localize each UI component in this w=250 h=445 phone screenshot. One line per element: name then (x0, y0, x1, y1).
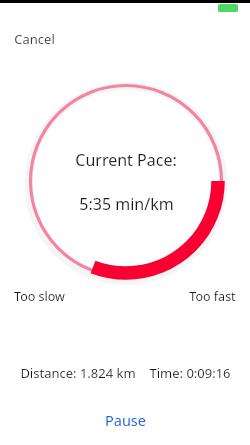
staticText: Time: 0:09:16 (149, 364, 231, 382)
staticText: Too fast (189, 288, 236, 305)
staticText: Current Pace: (75, 149, 177, 171)
staticText: Pause (105, 410, 146, 430)
staticText: 5:35 min/km (79, 193, 174, 215)
staticText: Distance: 1.824 km (20, 364, 136, 382)
button[interactable]: Pause (87, 405, 164, 435)
button[interactable]: Cancel (6, 26, 63, 52)
staticText: Cancel (14, 30, 55, 48)
other: Battery full (218, 4, 238, 12)
staticText: Too slow (14, 288, 65, 305)
